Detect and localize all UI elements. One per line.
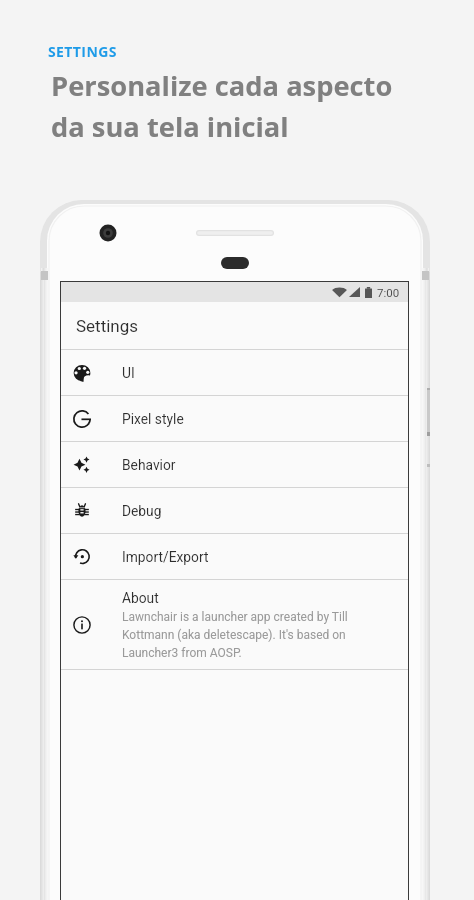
staticText: Pixel style: [122, 411, 184, 427]
staticText: Debug: [122, 503, 162, 519]
staticText: UI: [122, 365, 135, 381]
button[interactable]: UI: [61, 350, 408, 395]
button[interactable]: Pixel style: [61, 396, 408, 441]
button[interactable]: Behavior: [61, 442, 408, 487]
staticText: Personalize cada aspecto da sua tela ini…: [51, 67, 393, 145]
staticText: About: [122, 590, 159, 606]
staticText: SETTINGS: [48, 42, 117, 61]
button[interactable]: Debug: [61, 488, 408, 533]
staticText: Behavior: [122, 457, 176, 473]
staticText: Import/Export: [122, 549, 209, 565]
button[interactable]: Import/Export: [61, 534, 408, 579]
staticText: Lawnchair is a launcher app created by T…: [122, 610, 378, 660]
staticText: Settings: [76, 316, 139, 336]
button[interactable]: About: [61, 580, 408, 669]
staticText: 7:00: [377, 286, 400, 299]
